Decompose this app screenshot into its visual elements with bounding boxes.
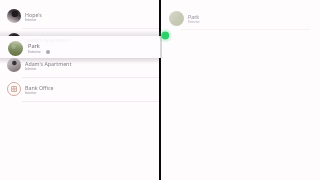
button[interactable]: Justin's Apartment — [0, 29, 159, 53]
staticText: Exterior — [188, 20, 200, 24]
button[interactable]: Bank Office — [0, 78, 159, 102]
staticText: Justin's Apartment — [25, 35, 71, 42]
button[interactable]: Park — [161, 10, 320, 26]
staticText: Interior — [25, 91, 37, 95]
staticText: Adam's Apartment — [25, 60, 72, 67]
other: Touch point — [158, 28, 173, 43]
staticText: Park — [28, 42, 40, 50]
button[interactable]: Justin's Apartment — [0, 36, 166, 58]
staticText: Park — [188, 13, 200, 20]
staticText: Interior — [25, 42, 37, 46]
staticText: Bank Office — [25, 84, 54, 91]
button[interactable]: Adam's Apartment — [0, 54, 159, 78]
staticText: Hope's — [25, 11, 42, 18]
button[interactable]: Hope's — [0, 5, 159, 29]
staticText: Exterior — [28, 49, 41, 54]
staticText: Interior — [25, 18, 37, 22]
staticText: Interior — [25, 67, 37, 71]
